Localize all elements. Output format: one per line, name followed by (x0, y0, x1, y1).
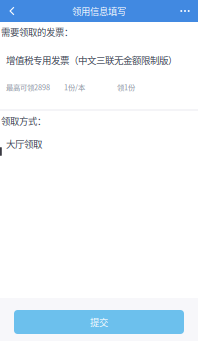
button[interactable]: 增值税专用发票（中文三联无金额限制版） (0, 51, 198, 109)
button[interactable]: 提交 (14, 310, 184, 334)
button[interactable]: More options (172, 0, 198, 22)
staticText: 1份/本 (64, 82, 85, 92)
staticText: 领1份 (117, 82, 135, 92)
button[interactable]: Back (0, 0, 24, 22)
staticText: 需要领取的发票： (1, 25, 73, 38)
staticText: 大厅领取 (6, 137, 42, 150)
staticText: 领取方式： (1, 114, 46, 127)
staticText: 最高可领2898 (6, 82, 50, 92)
staticText: 领用信息填写 (72, 4, 126, 18)
button[interactable]: 大厅领取 (0, 133, 198, 154)
staticText: 增值税专用发票（中文三联无金额限制版） (6, 53, 177, 67)
staticText: 提交 (90, 315, 108, 329)
